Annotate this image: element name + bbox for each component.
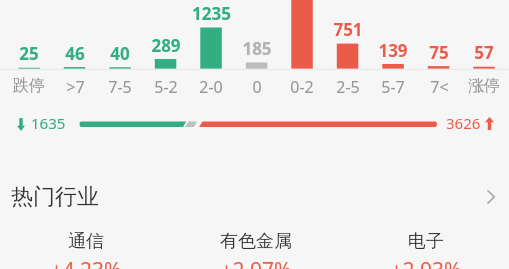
staticText: 25 [19,42,39,65]
staticText: 5-2 [154,76,178,98]
staticText: 7-5 [108,76,132,98]
staticText: 57 [474,41,494,64]
button[interactable]: 涨跌分布 [0,0,509,140]
button[interactable]: 热门行业 [0,182,509,212]
staticText: 3626 [446,113,481,133]
staticText: >7 [66,76,85,98]
staticText: 40 [110,42,130,65]
staticText: 75 [429,41,449,64]
staticText: 1635 [31,113,66,133]
staticText: 289 [151,34,181,57]
staticText: 涨停 [468,76,500,96]
staticText: 热门行业 [11,183,99,211]
button[interactable]: 电子 [341,227,509,269]
staticText: 有色金属 [220,230,292,253]
staticText: +2.93% [390,256,462,269]
staticText: 751 [333,18,363,41]
staticText: +4.23% [50,256,122,269]
staticText: 5-7 [381,76,405,98]
staticText: 通信 [68,230,104,253]
staticText: 46 [65,42,85,65]
staticText: 185 [242,37,272,60]
staticText: 7< [430,76,449,98]
staticText: 电子 [408,230,444,253]
staticText: 0-2 [290,76,314,98]
staticText: +2.97% [220,256,292,269]
staticText: 139 [378,39,408,62]
other: More hot industries [480,186,502,208]
staticText: 2-0 [199,76,223,98]
staticText: 2-5 [336,76,360,98]
button[interactable]: 通信 [1,227,171,269]
staticText: 跌停 [13,76,45,96]
staticText: 0 [252,76,262,98]
staticText: 1235 [192,2,231,25]
button[interactable]: 有色金属 [171,227,341,269]
